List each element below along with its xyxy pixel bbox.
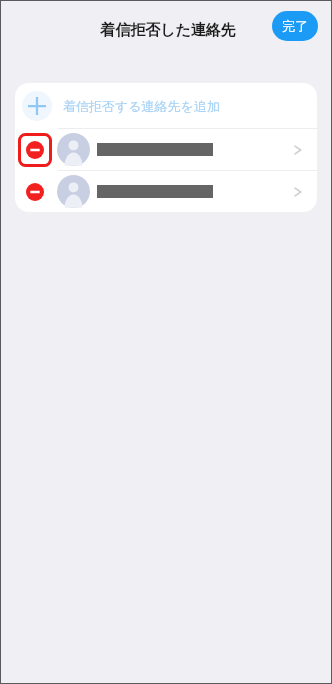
staticText: 着信拒否する連絡先を追加: [63, 98, 220, 114]
button[interactable]: Remove contact: [15, 129, 317, 170]
button[interactable]: 完了: [272, 11, 318, 41]
button[interactable]: Remove contact: [18, 133, 52, 167]
button[interactable]: Remove contact: [15, 171, 317, 212]
staticText: 完了: [282, 18, 308, 34]
staticText: 着信拒否した連絡先: [100, 21, 236, 40]
button[interactable]: Remove contact: [18, 175, 52, 209]
button[interactable]: 着信拒否する連絡先を追加: [15, 83, 317, 128]
